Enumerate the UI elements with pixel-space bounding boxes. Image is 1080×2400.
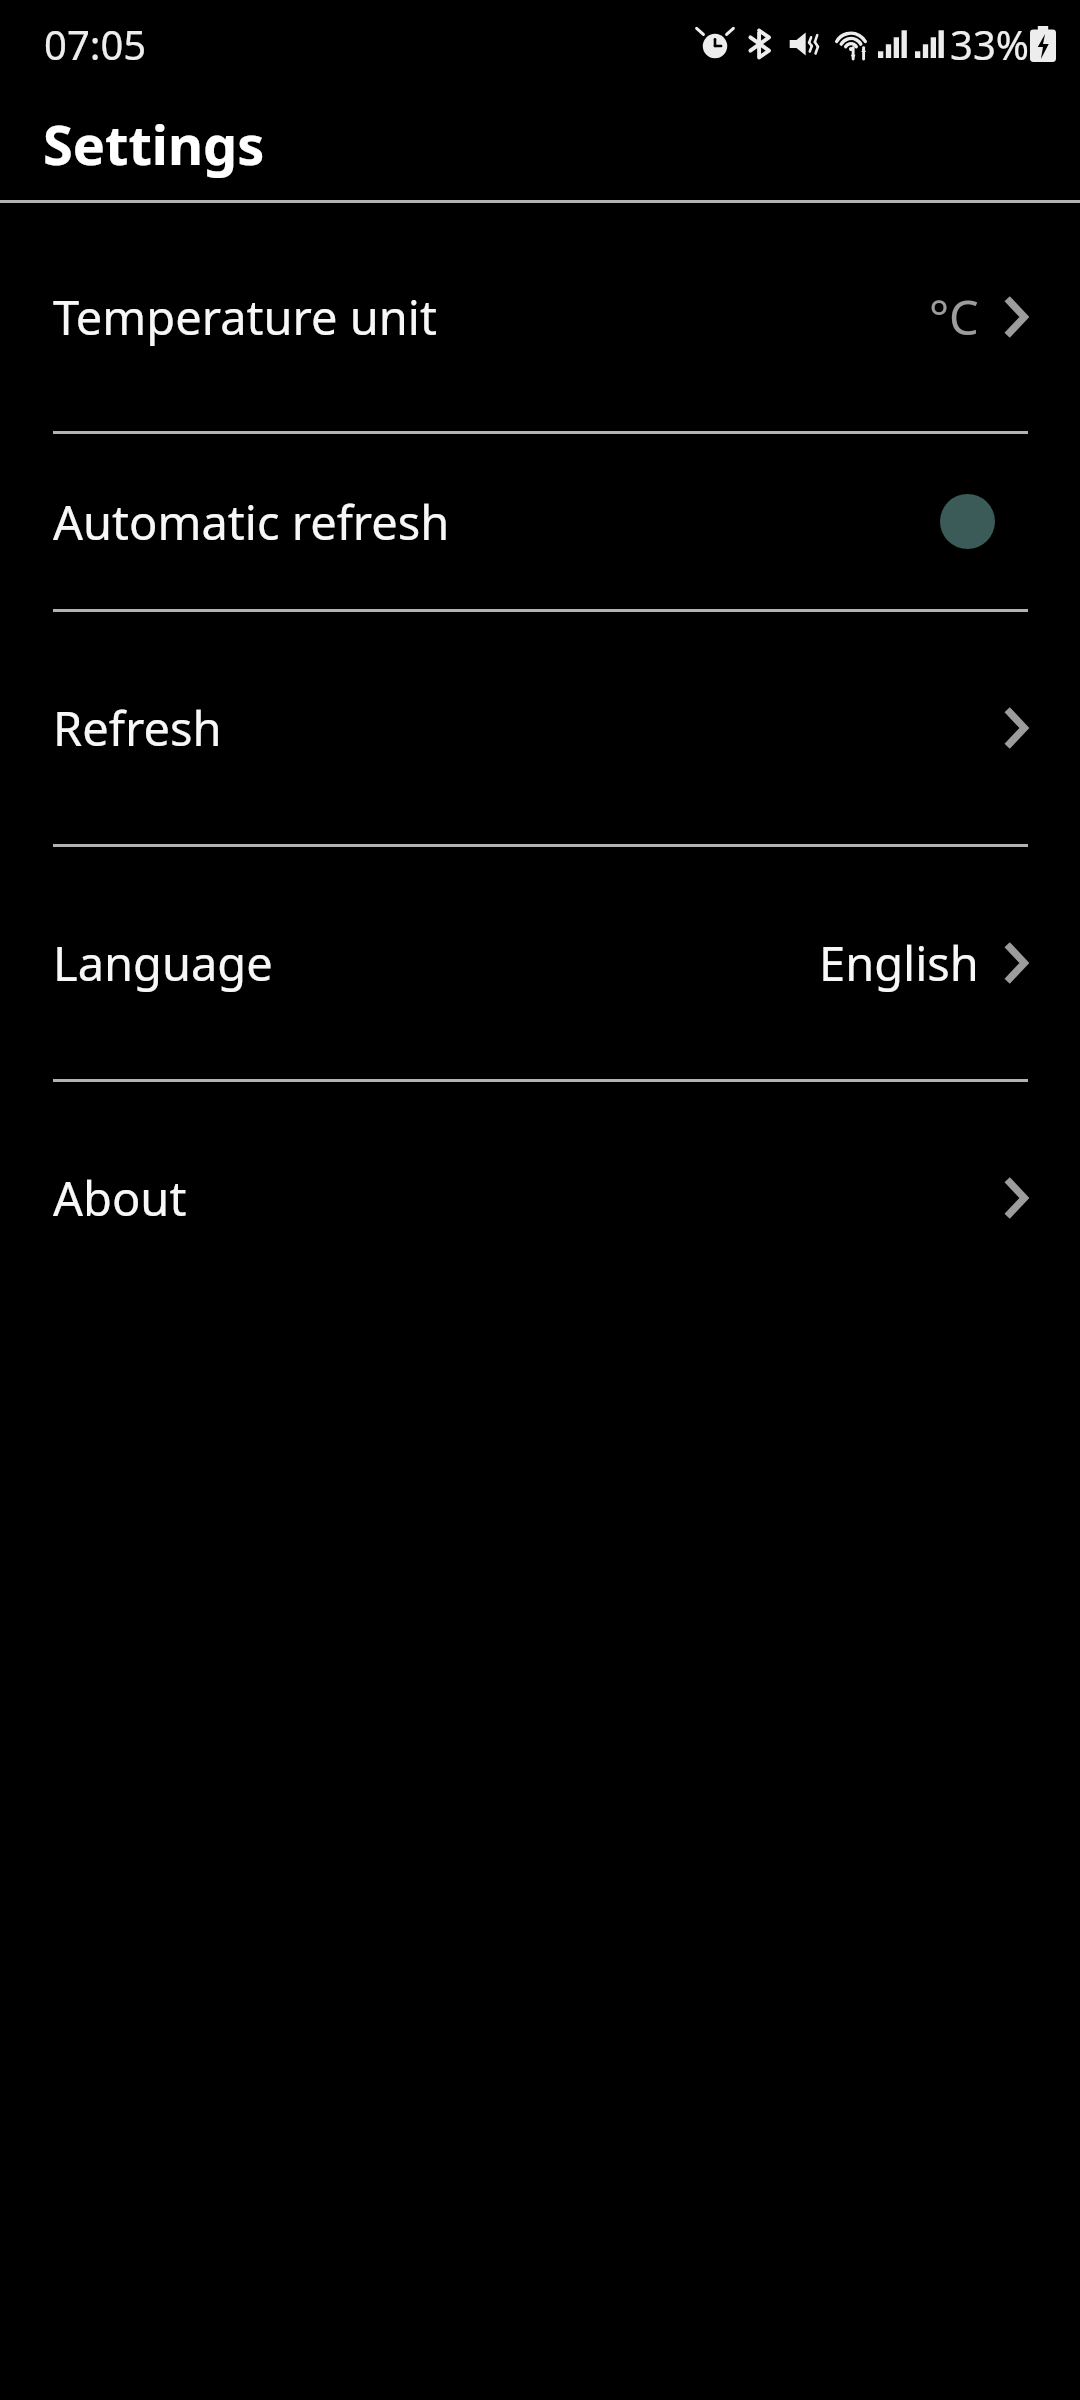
staticText: Automatic refresh — [53, 490, 450, 554]
button[interactable]: Refresh — [0, 612, 1080, 844]
staticText: 07:05 — [44, 17, 147, 71]
staticText: English — [819, 931, 979, 995]
other: Automatic refresh toggle — [940, 494, 995, 549]
staticText: Refresh — [53, 696, 222, 760]
button[interactable]: Automatic refresh — [0, 434, 1080, 609]
button[interactable]: Temperature unit — [0, 203, 1080, 431]
button[interactable]: About — [0, 1082, 1080, 1314]
staticText: °C — [929, 285, 979, 349]
staticText: 33% — [950, 17, 1029, 71]
button[interactable]: Language — [0, 847, 1080, 1079]
staticText: Temperature unit — [53, 285, 437, 349]
staticText: About — [53, 1166, 187, 1230]
staticText: Settings — [43, 107, 265, 181]
staticText: Language — [53, 931, 273, 995]
